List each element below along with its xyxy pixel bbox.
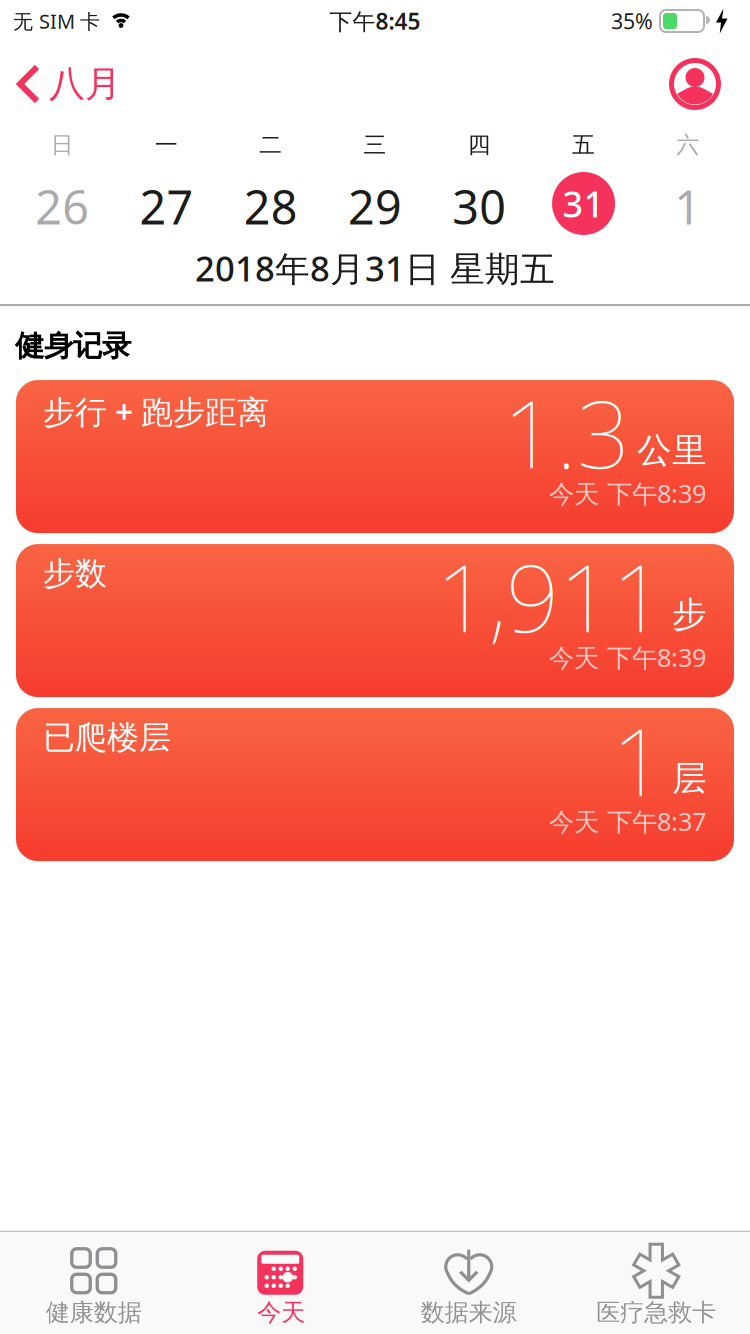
button[interactable]: 步行 + 跑步距离: [16, 380, 734, 533]
staticText: 步: [672, 593, 707, 636]
staticText: 医疗急救卡: [596, 1298, 716, 1327]
staticText: 31: [563, 180, 605, 227]
button[interactable]: 步数: [16, 544, 734, 697]
button[interactable]: 数据来源: [375, 1246, 562, 1327]
staticText: 八月: [49, 62, 121, 106]
staticText: 2018年8月31日 星期五: [195, 245, 555, 291]
staticText: 下午8:45: [329, 6, 420, 36]
staticText: 今天 下午8:37: [549, 804, 706, 838]
button[interactable]: 健康资料: [669, 58, 750, 110]
staticText: 30: [452, 175, 506, 237]
button[interactable]: 医疗急救卡: [562, 1246, 750, 1327]
staticText: 今天 下午8:39: [549, 476, 706, 510]
staticText: 三: [363, 131, 386, 159]
staticText: 数据来源: [421, 1298, 517, 1327]
staticText: 层: [672, 757, 707, 800]
staticText: 35%: [611, 7, 653, 35]
staticText: 六: [676, 131, 699, 159]
staticText: 二: [259, 131, 282, 159]
button[interactable]: 31: [531, 172, 636, 235]
staticText: 步行 + 跑步距离: [43, 390, 269, 433]
staticText: 1.3: [503, 370, 630, 494]
staticText: 步数: [43, 554, 107, 593]
staticText: 一: [155, 131, 178, 159]
staticText: 五: [572, 131, 595, 159]
staticText: 29: [348, 175, 402, 237]
button[interactable]: 1: [636, 172, 740, 235]
staticText: 健身记录: [15, 328, 131, 364]
staticText: 今天: [257, 1298, 305, 1327]
button[interactable]: 26: [10, 172, 114, 235]
staticText: 26: [35, 175, 89, 237]
button[interactable]: 今天: [187, 1246, 375, 1327]
staticText: 无 SIM 卡: [13, 8, 100, 34]
button[interactable]: 29: [323, 172, 427, 235]
staticText: 27: [139, 175, 193, 237]
button[interactable]: 八月: [0, 62, 121, 106]
staticText: 已爬楼层: [43, 718, 171, 757]
staticText: 日: [51, 131, 74, 159]
staticText: 28: [244, 175, 298, 237]
button[interactable]: 28: [219, 172, 323, 235]
staticText: 1: [674, 175, 701, 237]
staticText: 今天 下午8:39: [549, 640, 706, 674]
button[interactable]: 健康数据: [0, 1246, 187, 1327]
staticText: 四: [468, 131, 491, 159]
button[interactable]: 27: [114, 172, 219, 235]
staticText: 1: [612, 698, 665, 822]
button[interactable]: 30: [427, 172, 531, 235]
staticText: 1,911: [436, 534, 665, 658]
button[interactable]: 已爬楼层: [16, 708, 734, 861]
staticText: 健康数据: [46, 1298, 142, 1327]
staticText: 公里: [637, 429, 707, 472]
